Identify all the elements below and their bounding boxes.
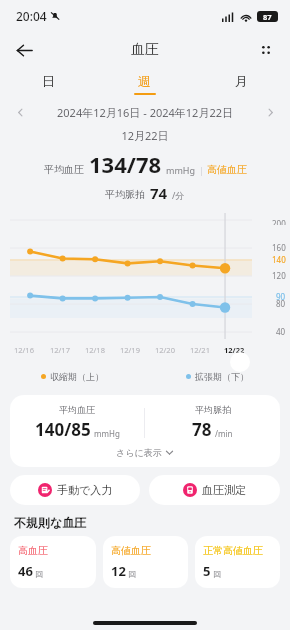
button[interactable]: Previous week bbox=[10, 102, 30, 122]
staticText: 血圧 bbox=[131, 41, 159, 59]
staticText: 回 bbox=[128, 569, 136, 579]
staticText: 120 bbox=[272, 270, 286, 281]
staticText: 140 bbox=[272, 254, 286, 265]
staticText: 90 bbox=[276, 291, 286, 302]
staticText: 拡張期（下） bbox=[195, 371, 249, 382]
button[interactable]: 手動で入力 bbox=[10, 475, 140, 505]
staticText: 40 bbox=[276, 326, 286, 337]
button[interactable]: 週 bbox=[96, 68, 193, 100]
staticText: 不規則な血圧 bbox=[14, 515, 87, 530]
staticText: /min bbox=[215, 428, 233, 439]
staticText: 高値血圧 bbox=[111, 544, 151, 557]
staticText: | bbox=[199, 164, 204, 176]
staticText: 87 bbox=[263, 12, 272, 22]
staticText: 収縮期（上） bbox=[50, 371, 104, 382]
staticText: 回 bbox=[35, 569, 43, 579]
staticText: 血圧測定 bbox=[202, 483, 246, 497]
staticText: 平均血圧 bbox=[59, 404, 95, 415]
staticText: /分 bbox=[172, 189, 185, 201]
button[interactable]: 高血圧 bbox=[10, 536, 96, 588]
staticText: 200 bbox=[272, 218, 286, 225]
staticText: 74 bbox=[150, 183, 168, 203]
staticText: 高血圧 bbox=[18, 544, 48, 557]
staticText: 12 bbox=[111, 562, 126, 580]
staticText: 平均血圧 bbox=[44, 163, 84, 176]
staticText: 12/16 bbox=[14, 345, 34, 355]
staticText: 12/22 bbox=[224, 345, 245, 355]
button[interactable]: Next week bbox=[260, 102, 280, 122]
button[interactable]: 血圧測定 bbox=[149, 475, 280, 505]
staticText: 12月22日 bbox=[0, 128, 290, 143]
staticText: 134/78 bbox=[89, 149, 162, 179]
button[interactable]: Chart selector handle bbox=[230, 352, 250, 372]
staticText: 78 bbox=[192, 418, 212, 441]
staticText: 回 bbox=[213, 569, 221, 579]
staticText: 高値血圧 bbox=[207, 163, 247, 176]
staticText: 12/21 bbox=[190, 345, 210, 355]
staticText: 正常高値血圧 bbox=[203, 544, 263, 557]
staticText: 平均脈拍 bbox=[105, 188, 145, 201]
button[interactable]: 月 bbox=[193, 68, 290, 100]
staticText: 140/85 bbox=[35, 418, 91, 441]
staticText: 平均脈拍 bbox=[195, 404, 231, 415]
staticText: 日 bbox=[42, 73, 55, 89]
button[interactable]: 平均血圧 bbox=[10, 395, 280, 467]
button[interactable]: さらに表示 bbox=[10, 447, 280, 458]
staticText: 12/19 bbox=[120, 345, 140, 355]
button[interactable]: 高値血圧 bbox=[103, 536, 188, 588]
staticText: 160 bbox=[272, 242, 286, 253]
staticText: 12/18 bbox=[85, 345, 105, 355]
staticText: 週 bbox=[138, 73, 151, 89]
staticText: 2024年12月16日 - 2024年12月22日 bbox=[30, 105, 260, 120]
button[interactable]: More options bbox=[250, 34, 282, 66]
staticText: さらに表示 bbox=[116, 447, 162, 458]
button[interactable]: 正常高値血圧 bbox=[195, 536, 280, 588]
staticText: 5 bbox=[203, 562, 211, 580]
staticText: 20:04 bbox=[16, 8, 47, 24]
button[interactable]: Back bbox=[8, 34, 40, 66]
button[interactable]: 日 bbox=[0, 68, 96, 100]
staticText: 80 bbox=[276, 298, 286, 309]
staticText: 12/20 bbox=[155, 345, 175, 355]
staticText: mmHg bbox=[166, 164, 196, 176]
staticText: 12/17 bbox=[50, 345, 70, 355]
staticText: 46 bbox=[18, 562, 33, 580]
staticText: 月 bbox=[235, 73, 248, 89]
staticText: 手動で入力 bbox=[57, 483, 113, 497]
staticText: mmHg bbox=[94, 428, 120, 439]
